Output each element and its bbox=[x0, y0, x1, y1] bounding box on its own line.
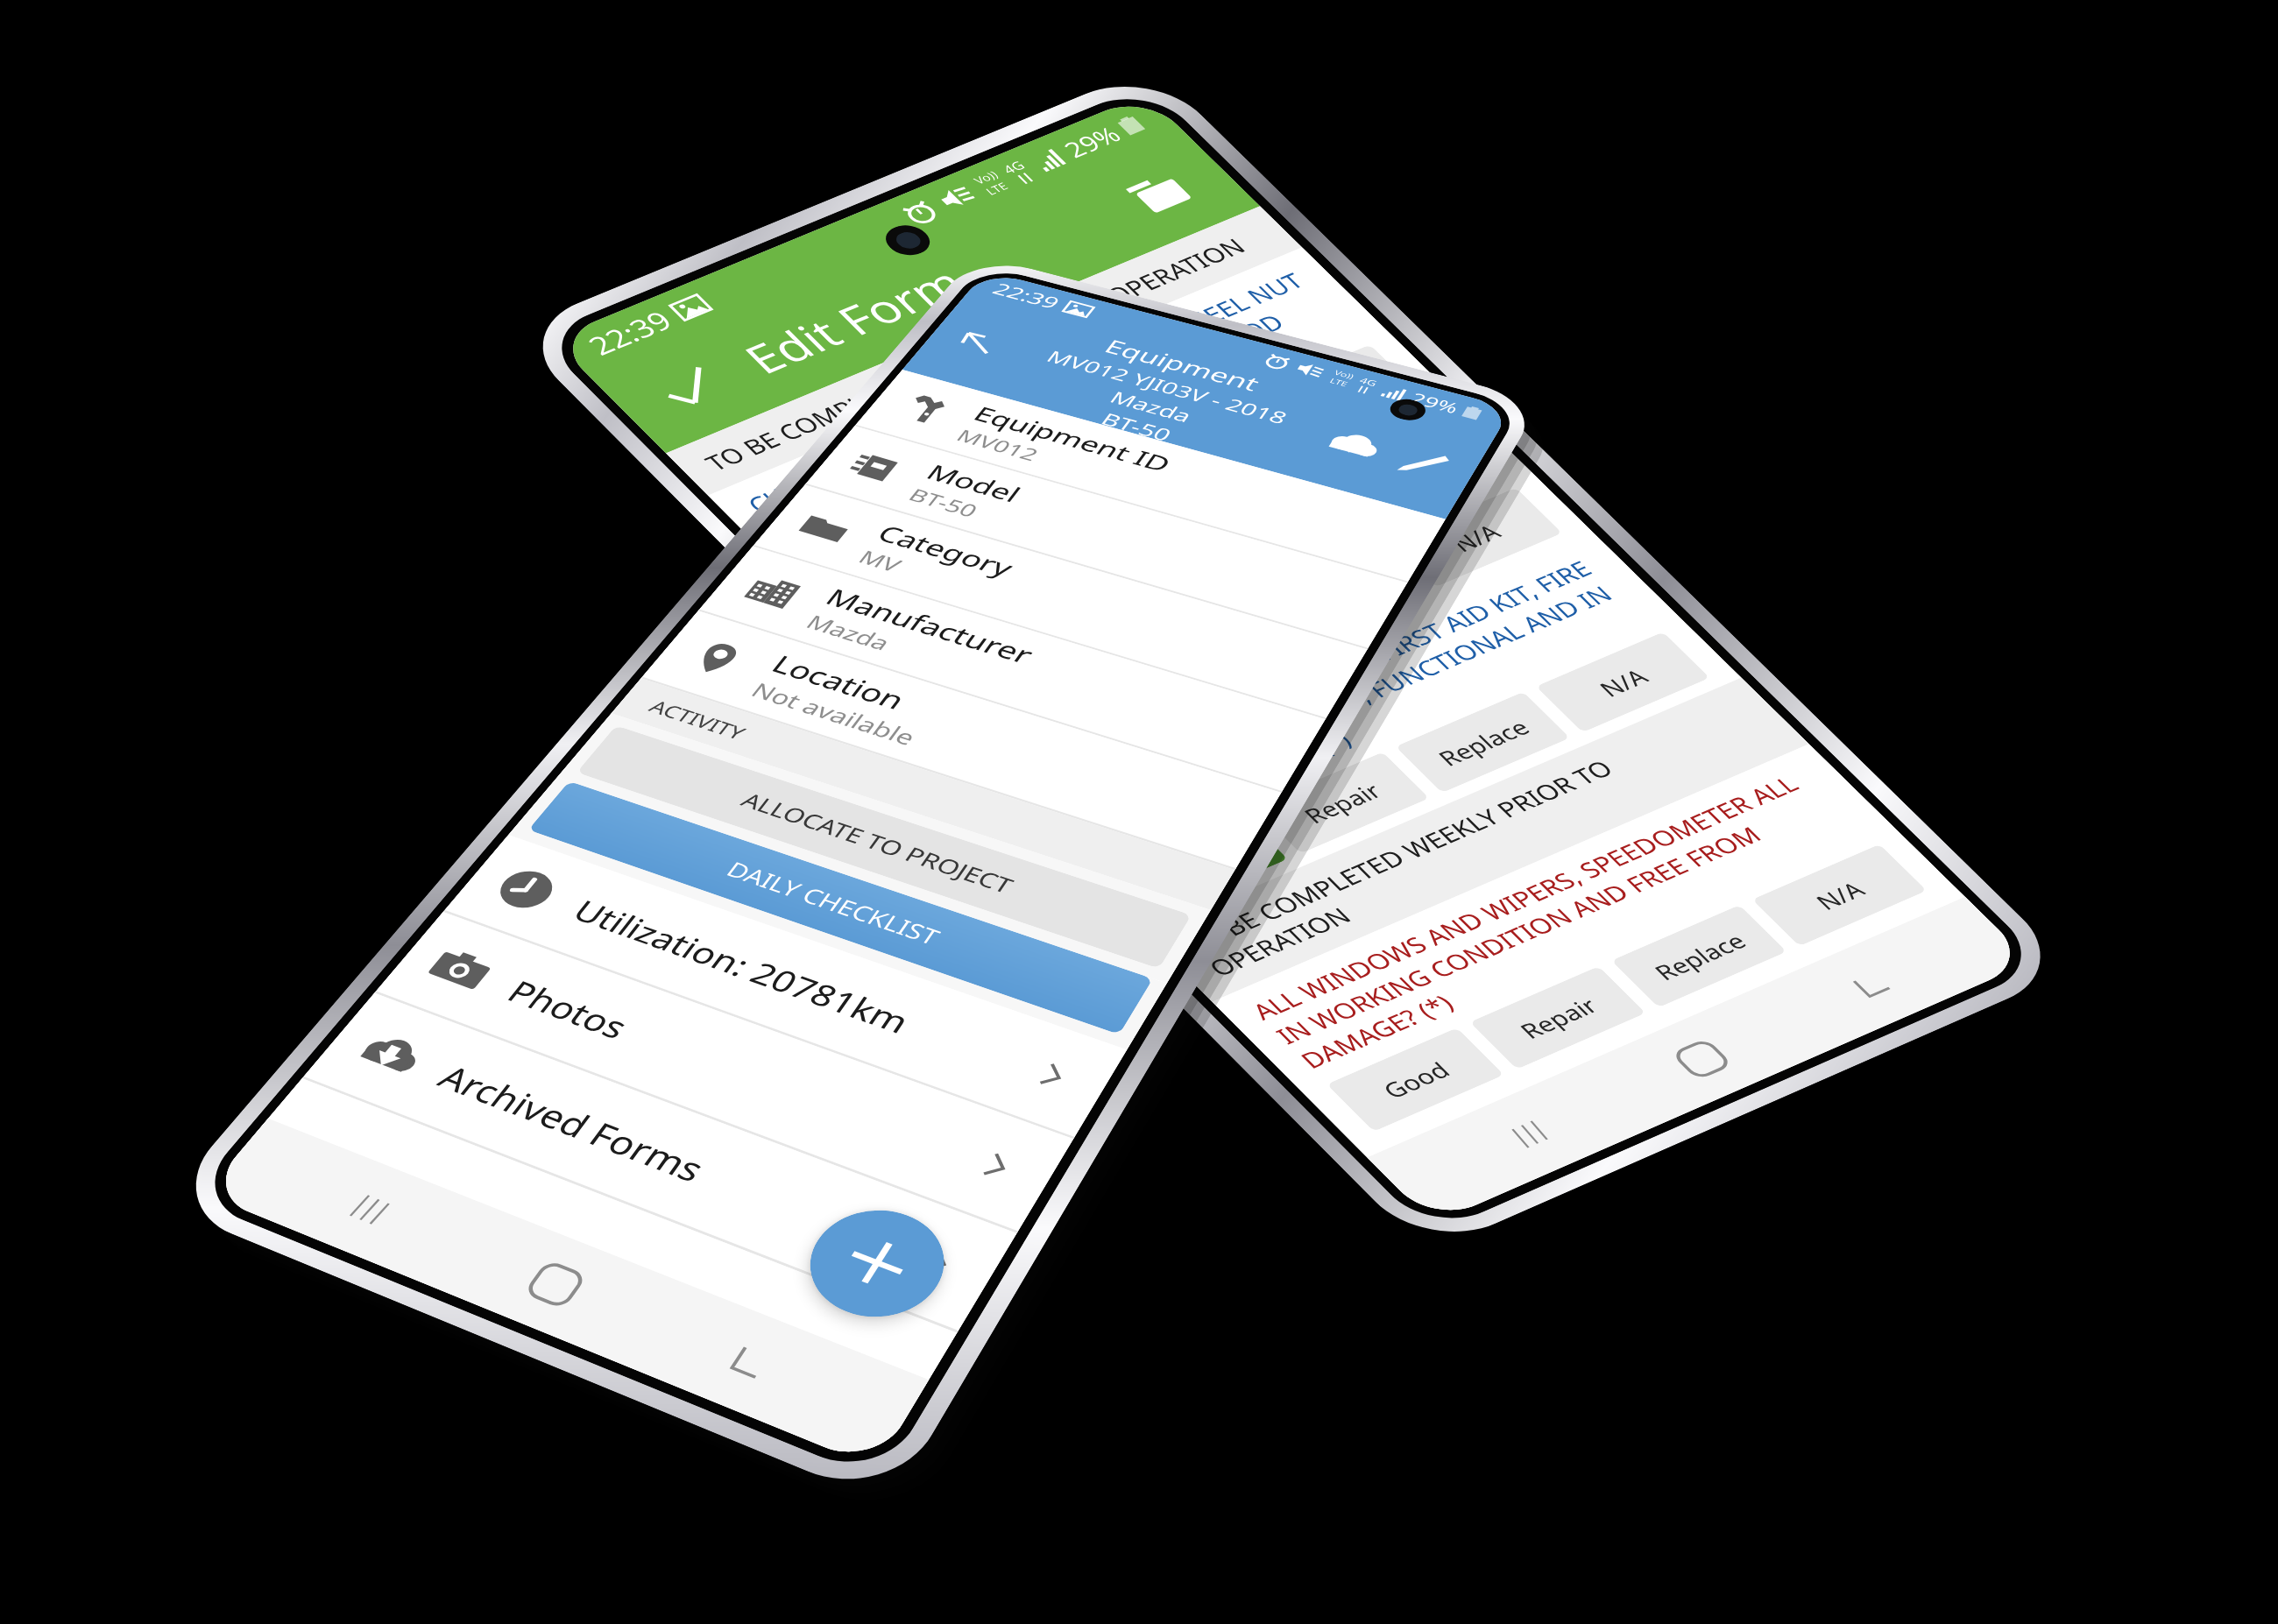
staticText: N/A bbox=[1808, 875, 1872, 916]
button[interactable]: Save bbox=[611, 337, 768, 441]
button[interactable]: N/A bbox=[1389, 488, 1562, 587]
staticText: 4G bbox=[1357, 375, 1379, 389]
staticText: 22:39 bbox=[578, 303, 681, 362]
staticText: BT-50 bbox=[1099, 407, 1177, 442]
staticText: Replace bbox=[1430, 713, 1536, 772]
staticText: Mazda bbox=[800, 609, 897, 656]
button[interactable]: Recents bbox=[1457, 1084, 1603, 1184]
button[interactable]: Photos bbox=[374, 912, 1074, 1233]
staticText: Equipment bbox=[1098, 334, 1266, 397]
button[interactable]: Recents bbox=[297, 1156, 444, 1266]
button[interactable]: ALLOCATE TO PROJECT bbox=[577, 725, 1192, 969]
staticText: ARE ALL LIGHTS, INDICATORS, HORN AND REV… bbox=[884, 408, 1507, 712]
staticText: 29% bbox=[1055, 120, 1128, 164]
staticText: N/A bbox=[1298, 374, 1361, 414]
button[interactable]: Replace bbox=[1248, 547, 1423, 647]
staticText: Not available bbox=[745, 676, 923, 751]
staticText: 29% bbox=[1406, 388, 1463, 418]
staticText: Manufacturer bbox=[818, 582, 1041, 671]
staticText: Model bbox=[920, 458, 1028, 509]
button[interactable]: Delete bbox=[1082, 142, 1238, 245]
staticText: MV012 YJI03V - 2018 Mazda bbox=[994, 337, 1327, 459]
staticText: ACTIVITY bbox=[644, 694, 752, 744]
staticText: Replace bbox=[1138, 424, 1243, 481]
staticText: Vo)) bbox=[970, 168, 1002, 187]
button[interactable]: Repair bbox=[1254, 752, 1429, 854]
button[interactable]: Back bbox=[674, 1303, 824, 1423]
button[interactable]: Replace bbox=[1103, 403, 1277, 502]
button[interactable]: Category bbox=[753, 485, 1367, 719]
button[interactable]: Good bbox=[1326, 1028, 1504, 1132]
staticText: ALLOCATE TO PROJECT bbox=[736, 787, 1020, 899]
button[interactable]: Edit bbox=[1376, 434, 1472, 494]
button[interactable]: Location bbox=[641, 611, 1281, 870]
staticText: Edit Form bbox=[730, 190, 1138, 385]
button[interactable]: DAILY CHECKLIST bbox=[528, 781, 1153, 1035]
staticText: DAILY CHECKLIST bbox=[721, 855, 946, 951]
button[interactable]: Utilization: 20781km bbox=[443, 835, 1127, 1139]
button[interactable]: Home bbox=[481, 1228, 629, 1343]
button[interactable]: Equipment ID bbox=[855, 370, 1446, 583]
staticText: 22:39 bbox=[987, 278, 1066, 314]
staticText: Good bbox=[1375, 1055, 1457, 1104]
button[interactable]: Manufacturer bbox=[698, 546, 1326, 793]
staticText: LTE bbox=[1328, 376, 1350, 388]
button[interactable]: Add bbox=[786, 1193, 967, 1335]
staticText: Repair bbox=[1004, 486, 1096, 538]
staticText: CHECK WHEEL & TYRE TREAD, CHECK WHEEL NU… bbox=[739, 266, 1361, 566]
staticText: Location bbox=[764, 648, 913, 717]
button[interactable]: Good bbox=[820, 521, 995, 622]
button[interactable]: Model bbox=[805, 426, 1407, 649]
button[interactable]: Repair bbox=[1107, 606, 1282, 707]
staticText: ALL WINDOWS AND WIPERS, SPEEDOMETER ALL … bbox=[1244, 763, 1870, 1075]
button[interactable]: Sync bbox=[1306, 415, 1402, 474]
button[interactable]: N/A bbox=[1243, 345, 1416, 443]
staticText: Utilization: 20781km bbox=[564, 891, 1045, 1088]
button[interactable]: Home bbox=[1629, 1010, 1774, 1108]
staticText: TO BE COMPLETED WEEKLY PRIOR TO OPERATIO… bbox=[1177, 696, 1778, 983]
button[interactable]: Replace bbox=[1611, 905, 1787, 1008]
staticText: N/A bbox=[1444, 518, 1507, 557]
staticText: IS ALL SAFETY EQUIPMENT I.E FIRST AID KI… bbox=[1030, 552, 1654, 859]
button[interactable]: N/A bbox=[1752, 844, 1927, 946]
staticText: Replace bbox=[1283, 568, 1389, 626]
staticText: MV bbox=[853, 545, 907, 577]
staticText: Repair bbox=[1149, 631, 1242, 683]
staticText: TO BE COMPLETED DAILY PRIOR TO OPERATION bbox=[698, 232, 1252, 477]
staticText: Repair bbox=[1296, 776, 1389, 829]
staticText: BT-50 bbox=[903, 483, 984, 522]
button[interactable]: Replace bbox=[1395, 692, 1570, 793]
button[interactable]: Archived Forms bbox=[302, 993, 1017, 1333]
button[interactable]: Good bbox=[1111, 812, 1288, 915]
staticText: Good bbox=[1013, 693, 1094, 741]
staticText: Equipment ID bbox=[967, 400, 1178, 478]
button[interactable]: Back bbox=[930, 316, 1024, 370]
button[interactable]: Repair bbox=[962, 462, 1136, 562]
staticText: MV012 bbox=[951, 424, 1044, 466]
staticText: Category bbox=[870, 518, 1021, 583]
staticText: Vo)) bbox=[1332, 368, 1356, 381]
button[interactable]: Repair bbox=[1470, 966, 1646, 1069]
staticText: N/A bbox=[1592, 662, 1655, 702]
button[interactable]: Back bbox=[1798, 936, 1943, 1034]
staticText: Archived Forms bbox=[429, 1056, 931, 1276]
staticText: Good bbox=[867, 548, 948, 595]
button[interactable]: N/A bbox=[1536, 632, 1710, 732]
staticText: LTE bbox=[982, 179, 1012, 198]
staticText: Repair bbox=[1512, 991, 1605, 1044]
staticText: Good bbox=[1159, 840, 1241, 888]
staticText: Replace bbox=[1646, 927, 1753, 986]
staticText: 4G bbox=[999, 157, 1029, 178]
staticText: Photos bbox=[498, 971, 989, 1179]
